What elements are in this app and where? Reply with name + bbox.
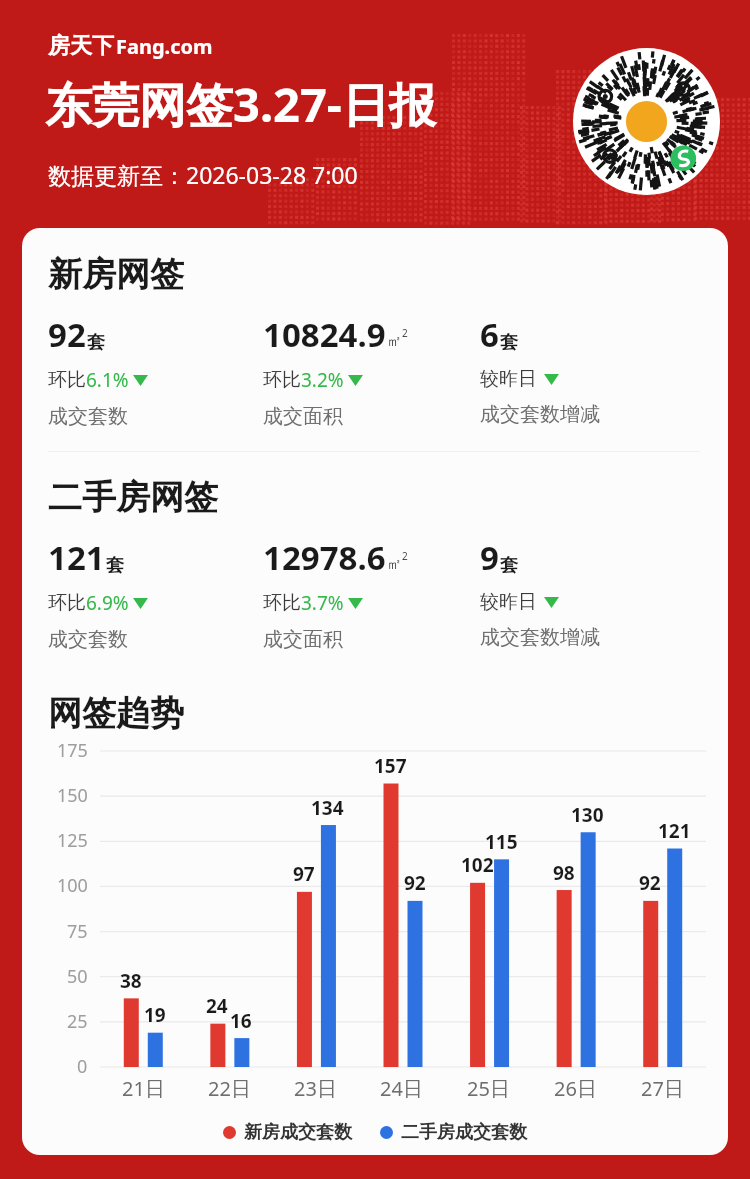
staticText: 50 — [67, 964, 88, 989]
staticText: 成交套数 — [48, 404, 128, 429]
staticText: 9 — [480, 535, 499, 580]
staticText: 新房成交套数 — [244, 1121, 352, 1144]
button[interactable]: 12978.6 — [263, 535, 480, 652]
staticText: 134 — [311, 795, 344, 821]
staticText: 环比 — [263, 368, 301, 392]
staticText: 21日 — [122, 1075, 165, 1102]
staticText: 10824.9 — [263, 312, 386, 357]
staticText: 130 — [571, 802, 604, 828]
staticText: 121 — [658, 818, 691, 844]
staticText: 成交套数增减 — [480, 402, 600, 427]
staticText: 成交面积 — [263, 627, 343, 652]
button[interactable]: 121 — [48, 535, 263, 652]
staticText: 0 — [77, 1054, 88, 1079]
staticText: 2 — [402, 326, 408, 340]
staticText: 102 — [461, 852, 494, 878]
staticText: 套 — [500, 331, 518, 354]
button[interactable]: 6 — [480, 312, 710, 427]
staticText: 二手房成交套数 — [401, 1121, 527, 1144]
staticText: 3.2% — [301, 367, 344, 393]
staticText: 125 — [57, 828, 88, 853]
staticText: 12978.6 — [263, 535, 386, 580]
staticText: 121 — [48, 535, 105, 580]
staticText: 27日 — [641, 1075, 684, 1102]
staticText: ㎡ — [387, 555, 402, 574]
staticText: 22日 — [208, 1075, 251, 1102]
staticText: 6.1% — [86, 367, 129, 393]
staticText: 26日 — [554, 1075, 597, 1102]
staticText: 2 — [402, 549, 408, 563]
staticText: 东莞网签3.27-日报 — [45, 72, 436, 136]
button[interactable]: 92 — [48, 312, 263, 429]
button[interactable]: 小程序二维码 — [573, 48, 720, 195]
staticText: 92 — [639, 870, 661, 896]
staticText: 115 — [485, 829, 518, 855]
staticText: 75 — [67, 919, 88, 944]
staticText: 3.7% — [301, 590, 344, 616]
staticText: 92 — [404, 870, 426, 896]
staticText: 数据更新至：2026-03-28 7:00 — [48, 159, 358, 190]
button[interactable]: 新房成交套数 — [223, 1121, 352, 1144]
button[interactable]: 二手房成交套数 — [380, 1121, 527, 1144]
staticText: 25 — [67, 1009, 88, 1034]
staticText: 38 — [120, 968, 142, 994]
staticText: 新房网签 — [48, 253, 184, 296]
staticText: 100 — [57, 873, 88, 898]
staticText: 套 — [106, 554, 124, 577]
staticText: 150 — [57, 783, 88, 808]
staticText: 19 — [144, 1002, 166, 1028]
staticText: 25日 — [467, 1075, 510, 1102]
staticText: 24 — [206, 993, 228, 1019]
staticText: 23日 — [294, 1075, 337, 1102]
staticText: 92 — [48, 312, 86, 357]
staticText: 成交套数增减 — [480, 625, 600, 650]
staticText: 二手房网签 — [48, 476, 218, 519]
staticText: 环比 — [48, 368, 86, 392]
button[interactable]: 10824.9 — [263, 312, 480, 429]
staticText: 环比 — [48, 591, 86, 615]
staticText: 98 — [553, 860, 575, 886]
staticText: 175 — [57, 738, 88, 763]
staticText: 6.9% — [86, 590, 129, 616]
staticText: 6 — [480, 312, 499, 357]
staticText: 房天下 — [48, 32, 114, 60]
button[interactable]: 9 — [480, 535, 710, 650]
staticText: 16 — [230, 1008, 252, 1034]
staticText: 24日 — [380, 1075, 423, 1102]
staticText: 套 — [87, 331, 105, 354]
staticText: 157 — [374, 753, 407, 779]
staticText: 较昨日 — [480, 367, 537, 391]
staticText: 成交套数 — [48, 627, 128, 652]
staticText: 套 — [500, 554, 518, 577]
staticText: Fang.com — [116, 33, 213, 60]
staticText: ㎡ — [387, 332, 402, 351]
staticText: 97 — [293, 861, 315, 887]
staticText: 环比 — [263, 591, 301, 615]
staticText: 较昨日 — [480, 590, 537, 614]
staticText: 成交面积 — [263, 404, 343, 429]
staticText: 网签趋势 — [48, 692, 184, 735]
